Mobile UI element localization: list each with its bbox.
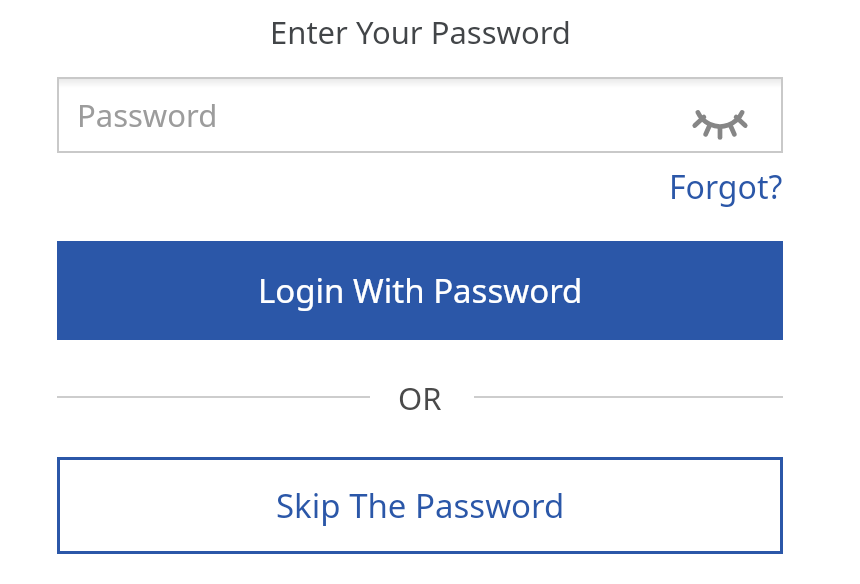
button[interactable]: Password: [57, 77, 783, 153]
staticText: Enter Your Password: [270, 11, 571, 53]
button[interactable]: Skip The Password: [57, 457, 783, 554]
button[interactable]: Forgot?: [669, 165, 783, 209]
staticText: Password: [77, 94, 218, 136]
staticText: OR: [398, 377, 442, 419]
staticText: Forgot?: [669, 165, 783, 209]
staticText: Skip The Password: [276, 483, 565, 528]
staticText: Login With Password: [258, 268, 583, 313]
button[interactable]: Login With Password: [57, 241, 783, 340]
